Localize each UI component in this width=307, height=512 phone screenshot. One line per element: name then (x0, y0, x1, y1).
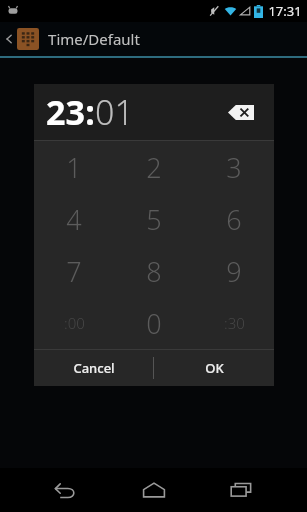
button[interactable]: Back (41, 468, 89, 512)
staticText: 9 (226, 253, 242, 290)
staticText: Cancel (73, 359, 115, 377)
staticText: 2 (146, 149, 162, 186)
staticText: 0 (146, 305, 162, 342)
button[interactable]: Up (0, 22, 307, 56)
staticText: 3 (226, 149, 242, 186)
staticText: 1 (66, 149, 82, 186)
button[interactable]: 4 (34, 193, 114, 245)
staticText: 4 (66, 201, 82, 238)
staticText: 6 (226, 201, 242, 238)
staticText: 7 (66, 253, 82, 290)
button[interactable]: 3 (194, 141, 274, 193)
staticText: :30 (224, 313, 245, 333)
staticText: 23 (46, 89, 85, 135)
button[interactable]: Recent apps (218, 468, 266, 512)
other: Up (4, 34, 14, 44)
button[interactable]: 9 (194, 245, 274, 297)
staticText: 17:31 (268, 2, 302, 20)
button[interactable]: 6 (194, 193, 274, 245)
button[interactable]: 8 (114, 245, 194, 297)
button[interactable]: 5 (114, 193, 194, 245)
button[interactable]: Home (130, 468, 178, 512)
staticText: 5 (146, 201, 162, 238)
button[interactable]: 0 (114, 297, 194, 349)
staticText: 01 (95, 89, 134, 135)
staticText: : (85, 89, 95, 135)
button[interactable]: 2 (114, 141, 194, 193)
button[interactable]: 1 (34, 141, 114, 193)
staticText: 8 (146, 253, 162, 290)
button[interactable]: Backspace (224, 97, 258, 127)
button[interactable]: OK (154, 350, 274, 386)
staticText: Time/Default (48, 29, 140, 49)
staticText: :00 (64, 313, 85, 333)
button[interactable]: 7 (34, 245, 114, 297)
button[interactable]: Cancel (34, 350, 153, 386)
staticText: OK (205, 359, 224, 377)
